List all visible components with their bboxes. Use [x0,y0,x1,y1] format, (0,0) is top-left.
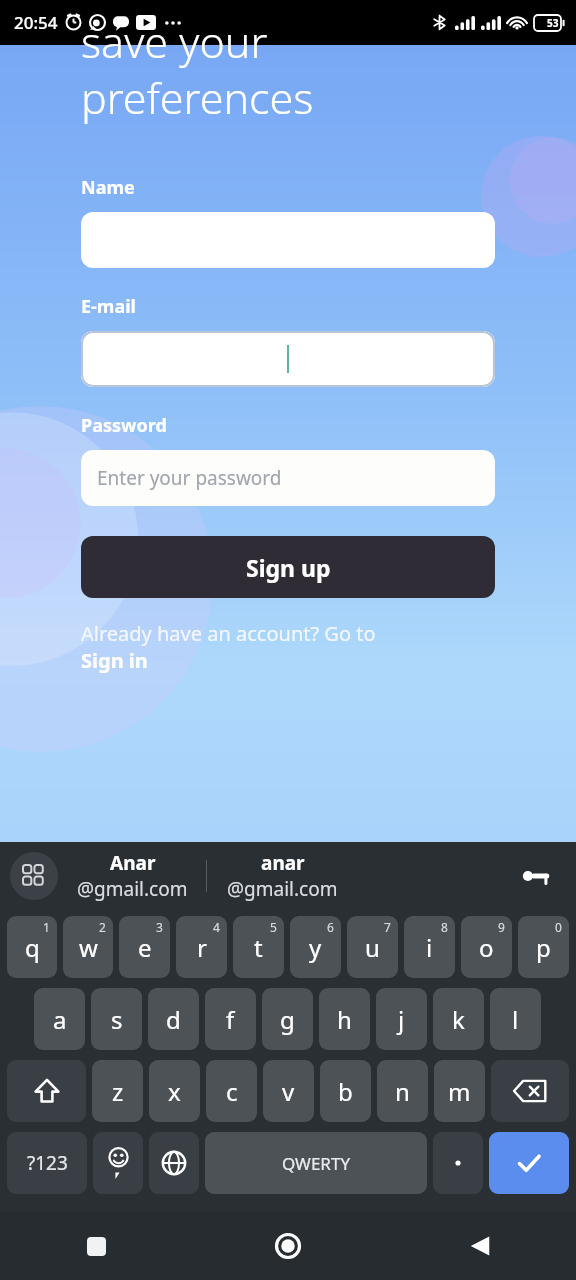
button[interactable]: Sign up [81,536,495,598]
button[interactable]: l [490,988,541,1050]
button[interactable]: Emoji [93,1132,143,1194]
button[interactable]: Period [433,1132,483,1194]
button[interactable]: p [518,916,569,978]
button[interactable]: anar [207,842,357,910]
button[interactable]: f [205,988,256,1050]
button[interactable]: c [206,1060,257,1122]
staticText: n [395,1075,410,1108]
button[interactable]: QWERTY [205,1132,427,1194]
button[interactable]: x [149,1060,200,1122]
button[interactable]: Anar [58,842,206,910]
staticText: Anar [110,850,156,876]
button[interactable]: u [347,916,398,978]
staticText: 3 [156,919,163,935]
button[interactable]: h [319,988,370,1050]
button[interactable]: Home [192,1212,384,1280]
staticText: w [79,931,98,964]
staticText: Name [81,175,135,200]
staticText: 2 [99,919,106,935]
button[interactable]: o [461,916,512,978]
button[interactable]: a [34,988,85,1050]
staticText: t [254,931,263,964]
button[interactable]: y [290,916,341,978]
staticText: v [282,1075,295,1108]
staticText: 6 [327,919,334,935]
staticText: @gmail.com [77,876,188,902]
button[interactable]: r [176,916,227,978]
button[interactable]: m [434,1060,485,1122]
staticText: Sign up [246,552,331,583]
button[interactable] [81,212,495,268]
staticText: m [448,1075,471,1108]
button[interactable]: Enter [489,1132,569,1194]
staticText: 1 [43,919,50,935]
button[interactable]: g [262,988,313,1050]
staticText: 53 [547,16,559,30]
staticText: QWERTY [282,1152,351,1175]
staticText: 7 [384,919,391,935]
staticText: e [138,931,152,964]
button[interactable]: j [376,988,427,1050]
staticText: 4 [213,919,220,935]
button[interactable]: Already have an account? Go to [81,620,376,674]
button[interactable]: b [320,1060,371,1122]
button[interactable]: w [63,916,113,978]
button[interactable] [81,331,495,387]
button[interactable]: Enter your password [81,450,495,506]
button[interactable]: e [119,916,170,978]
staticText: i [426,931,433,964]
staticText: x [168,1075,181,1108]
button[interactable]: d [148,988,199,1050]
button[interactable]: Password manager [514,854,558,898]
staticText: anar [261,850,305,876]
staticText: b [338,1075,353,1108]
button[interactable]: i [404,916,455,978]
staticText: f [226,1003,235,1036]
staticText: p [536,931,551,964]
button[interactable]: s [91,988,142,1050]
staticText: Sign in [81,647,148,674]
button[interactable]: n [377,1060,428,1122]
staticText: o [479,931,494,964]
staticText: d [166,1003,181,1036]
staticText: l [512,1003,519,1036]
staticText: k [452,1003,465,1036]
button[interactable]: Language [149,1132,199,1194]
staticText: 8 [441,919,448,935]
staticText: 9 [498,919,505,935]
button[interactable]: Shift [7,1060,86,1122]
staticText: r [197,931,207,964]
button[interactable]: q [7,916,57,978]
button[interactable]: z [92,1060,143,1122]
button[interactable]: ?123 [7,1132,87,1194]
staticText: z [112,1075,124,1108]
staticText: q [25,931,40,964]
staticText: u [365,931,380,964]
staticText: 5 [270,919,277,935]
staticText: 20:54 [14,11,58,34]
staticText: a [53,1003,67,1036]
staticText: s [111,1003,123,1036]
staticText: g [280,1003,295,1036]
staticText: Password [81,413,167,438]
staticText: ?123 [27,1150,68,1176]
button[interactable]: Recent apps [0,1212,192,1280]
staticText: 0 [555,919,562,935]
staticText: @gmail.com [227,876,338,902]
button[interactable]: Clipboard suggestions [10,852,58,900]
button[interactable]: Backspace [491,1060,569,1122]
staticText: h [337,1003,352,1036]
staticText: c [226,1075,238,1108]
staticText: y [309,931,322,964]
button[interactable]: Back [384,1212,576,1280]
staticText: j [398,1003,405,1036]
button[interactable]: v [263,1060,314,1122]
staticText: Enter your password [97,465,282,491]
staticText: E-mail [81,294,136,319]
staticText: Already have an account? Go to [81,620,376,647]
button[interactable]: k [433,988,484,1050]
button[interactable]: t [233,916,284,978]
staticText: save your preferences [81,12,314,127]
